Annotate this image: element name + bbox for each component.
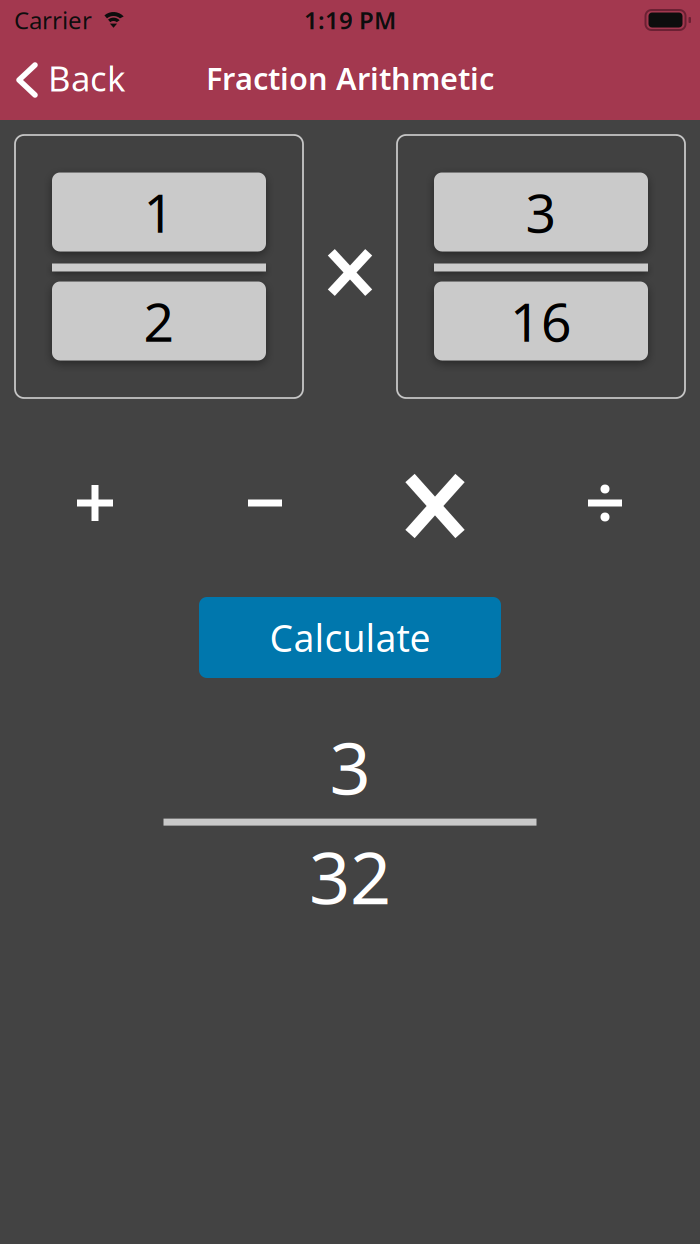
staticText: Carrier <box>14 4 92 36</box>
button[interactable]: First numerator <box>52 172 266 251</box>
button[interactable]: Calculate <box>199 597 501 678</box>
button[interactable]: Divide <box>520 448 690 558</box>
staticText: 2 <box>143 286 174 356</box>
button[interactable]: Second denominator <box>434 281 648 360</box>
button[interactable]: Add <box>10 448 180 558</box>
staticText: Calculate <box>269 613 430 662</box>
button[interactable]: First denominator <box>52 281 266 360</box>
staticText: Back <box>48 55 126 101</box>
button[interactable]: Second numerator <box>434 172 648 251</box>
staticText: 3 <box>525 177 556 247</box>
staticText: Fraction Arithmetic <box>206 58 494 98</box>
staticText: 1 <box>143 177 174 247</box>
staticText: 32 <box>309 829 391 924</box>
staticText: 16 <box>510 286 572 356</box>
staticText: 3 <box>329 719 370 815</box>
button[interactable]: Multiply <box>350 448 520 558</box>
staticText: 1:19 PM <box>304 4 396 36</box>
button[interactable]: Subtract <box>180 448 350 558</box>
button[interactable]: Back <box>0 48 146 112</box>
